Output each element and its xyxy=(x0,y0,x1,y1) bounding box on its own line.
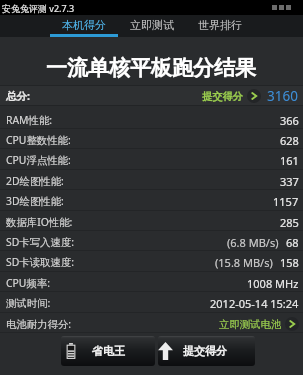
button[interactable]: 数据库IO性能: xyxy=(0,210,303,230)
button[interactable]: 世界排行 xyxy=(186,15,254,37)
staticText: 提交得分 xyxy=(202,90,243,103)
button[interactable]: SD卡写入速度: xyxy=(0,230,303,250)
staticText: 161 xyxy=(280,153,299,168)
staticText: 立即测试电池 xyxy=(219,318,282,331)
button[interactable]: CPU频率: xyxy=(0,271,303,291)
button[interactable]: RAM性能: xyxy=(0,108,303,128)
button[interactable]: 提交得分 xyxy=(158,336,255,366)
staticText: (15.8 MB/s) xyxy=(215,255,273,270)
staticText: SD卡写入速度: xyxy=(6,235,75,249)
staticText: CPU频率: xyxy=(6,276,51,290)
staticText: 1008 MHz xyxy=(247,276,299,291)
staticText: 1157 xyxy=(273,194,299,209)
staticText: 158 xyxy=(280,255,299,270)
button[interactable]: CPU浮点性能: xyxy=(0,148,303,168)
staticText: 3D绘图性能: xyxy=(6,194,64,208)
button[interactable]: 省电王 xyxy=(61,336,155,366)
staticText: 立即测试 xyxy=(130,18,174,32)
staticText: 一流单核平板跑分结果 xyxy=(46,55,256,81)
button[interactable]: 测试时间: xyxy=(0,291,303,311)
button[interactable]: 本机得分 xyxy=(50,15,118,37)
staticText: RAM性能: xyxy=(6,113,53,127)
button[interactable]: 总分: xyxy=(0,86,303,105)
button[interactable]: 3D绘图性能: xyxy=(0,189,303,209)
staticText: 366 xyxy=(280,113,299,128)
staticText: 68 xyxy=(286,235,299,250)
staticText: 总分: xyxy=(6,89,30,103)
button[interactable]: 2D绘图性能: xyxy=(0,169,303,189)
staticText: (6.8 MB/s) xyxy=(227,235,279,250)
staticText: 285 xyxy=(280,215,299,230)
button[interactable]: 电池耐力得分: xyxy=(0,312,303,332)
button[interactable]: CPU整数性能: xyxy=(0,128,303,148)
staticText: 数据库IO性能: xyxy=(6,215,73,229)
staticText: 337 xyxy=(280,174,299,189)
staticText: CPU整数性能: xyxy=(6,133,71,147)
staticText: 3160 xyxy=(267,87,298,105)
staticText: 安兔兔评测 v2.7.3 xyxy=(2,2,75,14)
staticText: 628 xyxy=(280,133,299,148)
staticText: SD卡读取速度: xyxy=(6,255,75,269)
staticText: 提交得分 xyxy=(183,344,227,358)
staticText: 2D绘图性能: xyxy=(6,174,64,188)
staticText: 省电王 xyxy=(92,344,125,358)
button[interactable]: 立即测试 xyxy=(118,15,186,37)
staticText: 本机得分 xyxy=(62,18,106,32)
staticText: 2012-05-14 15:24 xyxy=(210,296,299,311)
button[interactable]: SD卡读取速度: xyxy=(0,250,303,270)
staticText: 测试时间: xyxy=(6,296,51,310)
staticText: CPU浮点性能: xyxy=(6,153,71,167)
staticText: 电池耐力得分: xyxy=(6,317,72,331)
staticText: 世界排行 xyxy=(198,18,242,32)
